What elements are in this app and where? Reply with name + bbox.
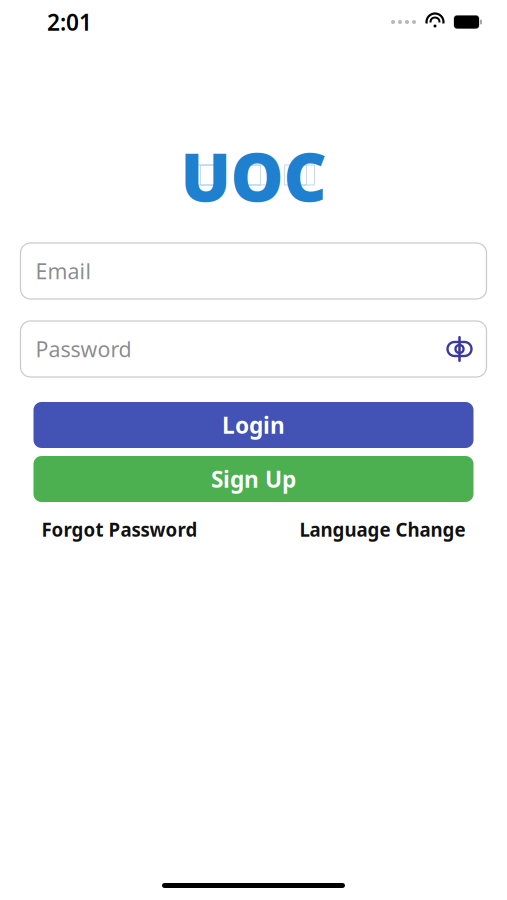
button[interactable]: Sign Up — [33, 456, 473, 502]
button[interactable]: Show password — [442, 332, 476, 366]
button[interactable]: Forgot Password — [37, 512, 201, 547]
staticText: Email — [35, 257, 91, 285]
staticText: Language Change — [299, 517, 465, 542]
button[interactable]: Language Change — [295, 512, 469, 547]
staticText: 2:01 — [47, 7, 92, 37]
staticText: Forgot Password — [41, 517, 197, 542]
staticText: Password — [35, 335, 131, 363]
button[interactable]: Login — [33, 402, 473, 448]
staticText: Login — [222, 410, 285, 440]
staticText: UOC — [180, 132, 326, 220]
staticText: Sign Up — [211, 464, 296, 494]
